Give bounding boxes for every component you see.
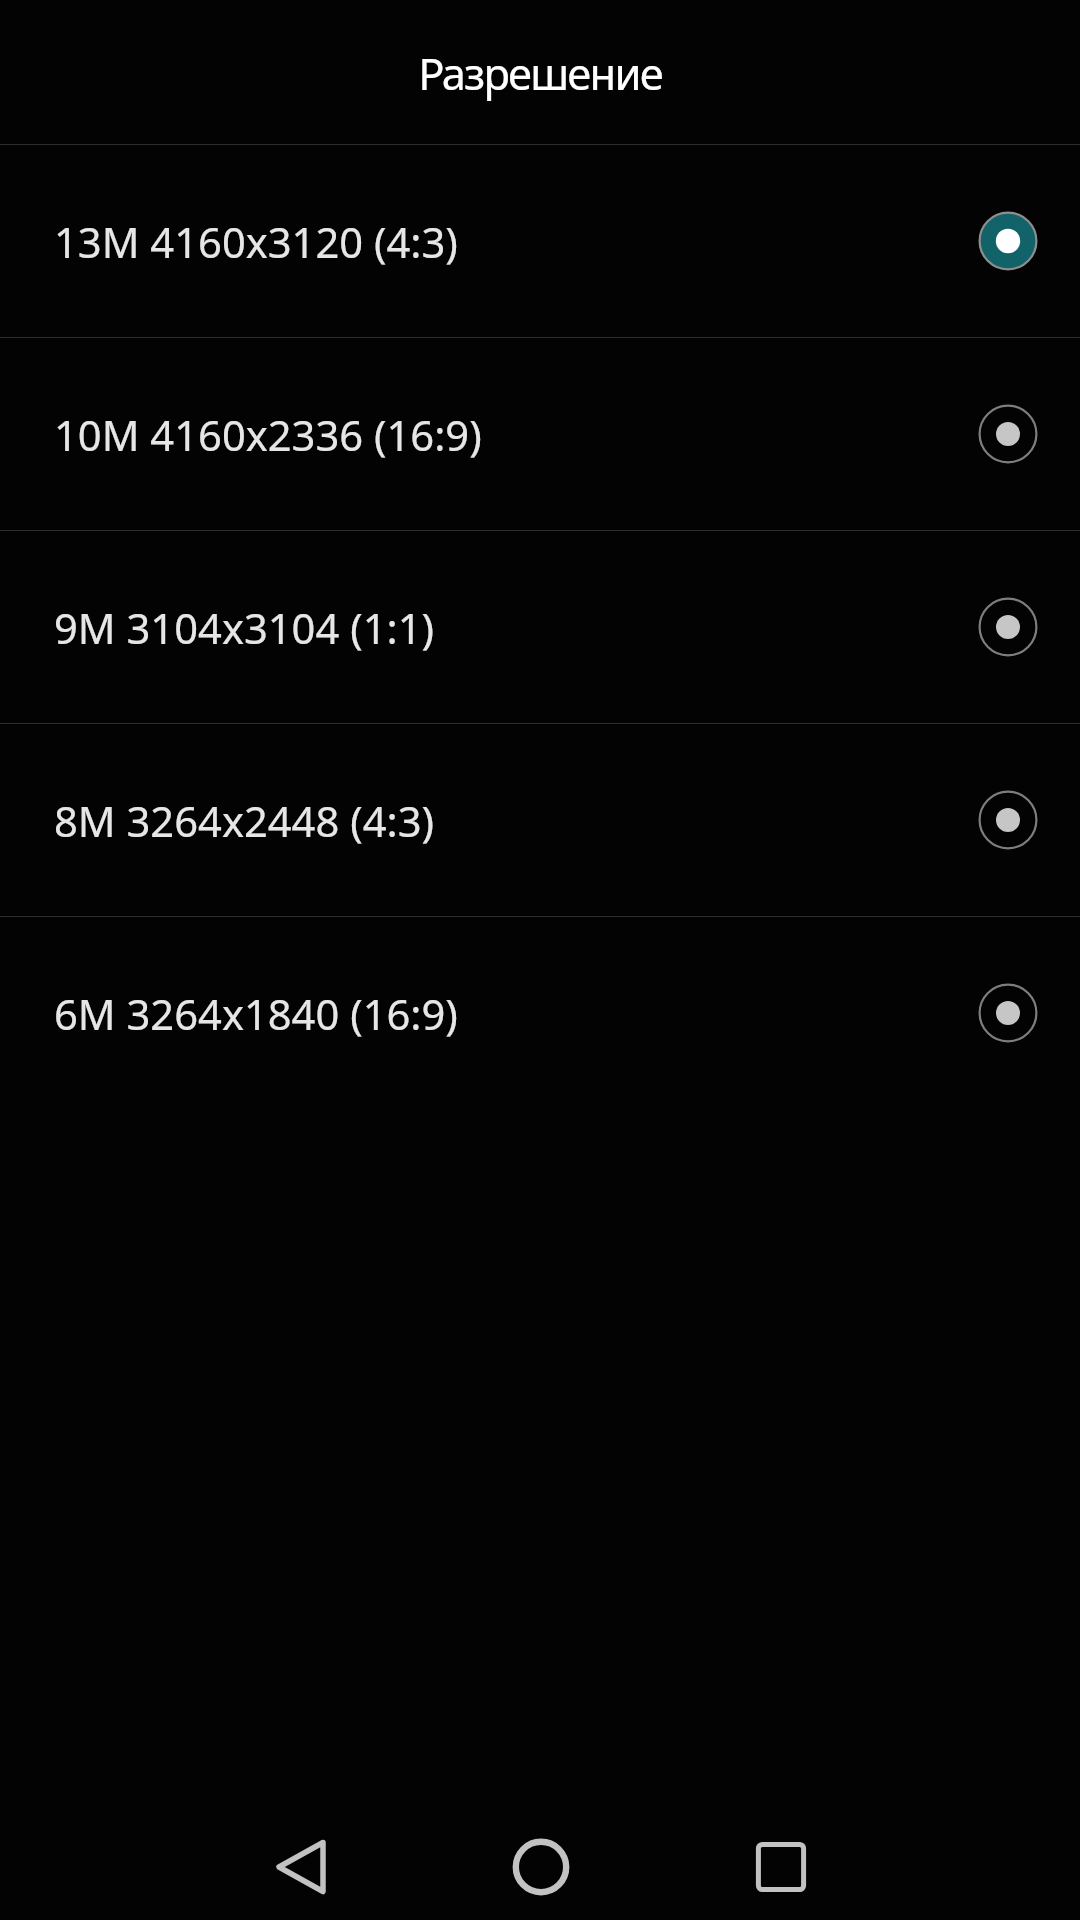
staticText: Разрешение bbox=[418, 43, 662, 102]
staticText: 13M 4160x3120 (4:3) bbox=[54, 213, 458, 270]
button[interactable]: Back bbox=[221, 1787, 381, 1920]
staticText: 9M 3104x3104 (1:1) bbox=[54, 599, 435, 656]
button[interactable]: 6M 3264x1840 (16:9) bbox=[0, 917, 1080, 1109]
staticText: 6M 3264x1840 (16:9) bbox=[54, 985, 458, 1042]
button[interactable]: Recent apps bbox=[701, 1787, 861, 1920]
staticText: 8M 3264x2448 (4:3) bbox=[54, 792, 435, 849]
button[interactable]: 10M 4160x2336 (16:9) bbox=[0, 338, 1080, 530]
button[interactable]: 9M 3104x3104 (1:1) bbox=[0, 531, 1080, 723]
button[interactable]: 8M 3264x2448 (4:3) bbox=[0, 724, 1080, 916]
button[interactable]: Home bbox=[461, 1787, 621, 1920]
staticText: 10M 4160x2336 (16:9) bbox=[54, 406, 482, 463]
button[interactable]: 13M 4160x3120 (4:3) bbox=[0, 145, 1080, 337]
